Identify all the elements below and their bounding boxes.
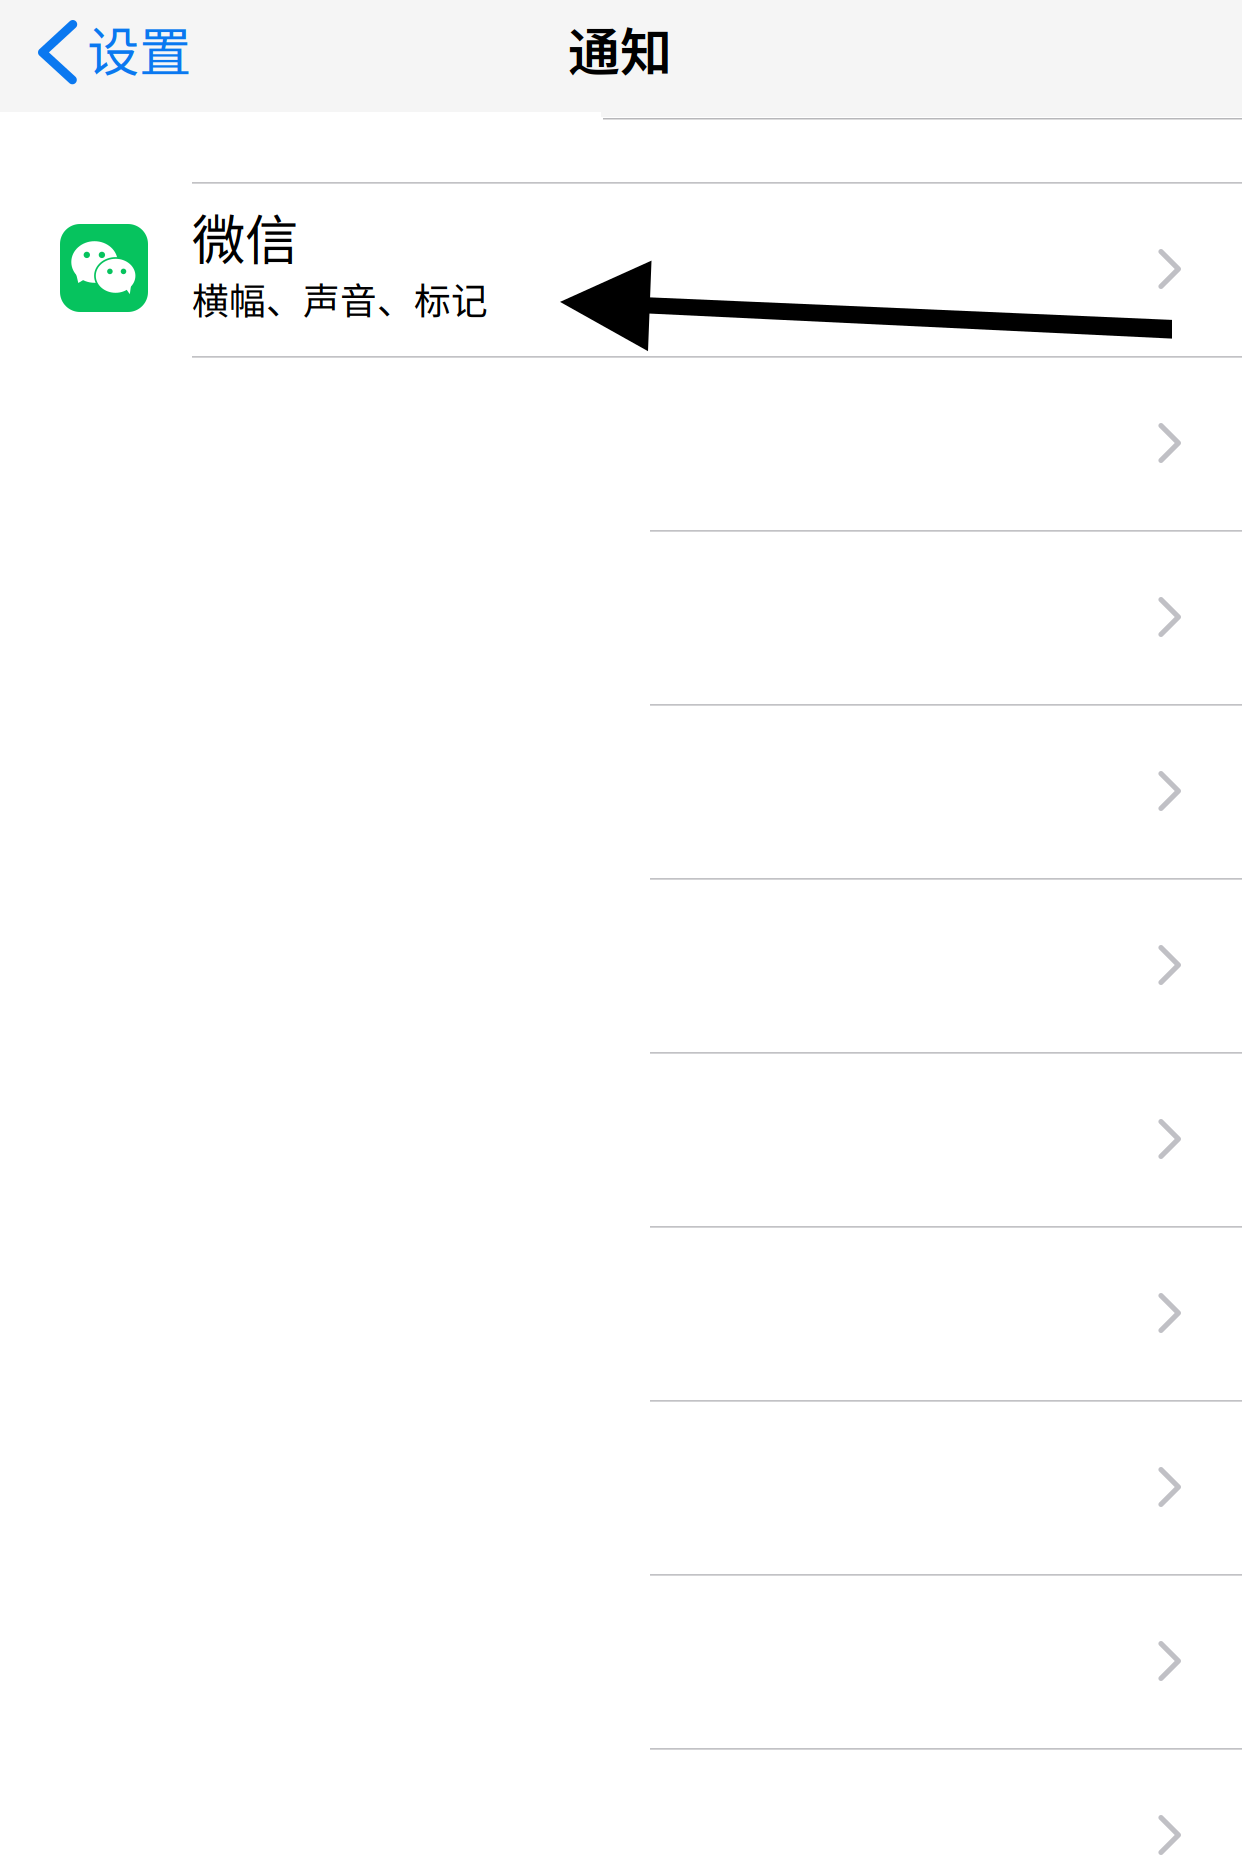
button[interactable]: Notification settings xyxy=(0,1748,1242,1856)
staticText: 微信 xyxy=(192,198,298,275)
button[interactable]: 设置 xyxy=(26,6,246,106)
button[interactable]: Notification settings xyxy=(0,356,1242,530)
staticText: 横幅、声音、标记 xyxy=(192,272,488,325)
button[interactable]: Notification settings xyxy=(0,1226,1242,1400)
button[interactable]: Notification settings xyxy=(0,878,1242,1052)
staticText: 通知 xyxy=(568,11,672,86)
button[interactable]: Notification settings xyxy=(0,1052,1242,1226)
button[interactable]: Notification settings xyxy=(0,704,1242,878)
button[interactable]: 微信 xyxy=(0,182,1242,356)
staticText: 设置 xyxy=(87,11,191,86)
button[interactable]: Notification settings xyxy=(0,1574,1242,1748)
button[interactable]: Notification settings xyxy=(0,1400,1242,1574)
button[interactable]: Notification settings xyxy=(0,530,1242,704)
